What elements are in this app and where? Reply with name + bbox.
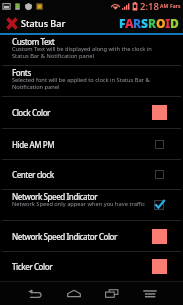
- button[interactable]: Recent apps: [99, 282, 124, 305]
- staticText: Clock Color: [12, 107, 51, 118]
- button[interactable]: Ticker Color: [0, 252, 183, 281]
- button[interactable]: Custom Text: [0, 35, 183, 65]
- staticText: 2:18: [140, 0, 159, 13]
- staticText: O: [156, 15, 165, 31]
- staticText: D: [170, 15, 178, 31]
- button[interactable]: Network Speed Indicator Color: [0, 221, 183, 251]
- staticText: Status Bar & Notification panel: [12, 52, 94, 60]
- staticText: Network Speed Indicator Color: [12, 231, 117, 242]
- staticText: R: [133, 15, 141, 31]
- button[interactable]: Home: [61, 282, 86, 305]
- staticText: Ticker Color: [12, 261, 53, 272]
- button[interactable]: Fonts: [0, 66, 183, 96]
- staticText: F: [119, 15, 125, 31]
- staticText: Custom Text: [12, 36, 55, 47]
- button[interactable]: Back: [22, 282, 47, 305]
- staticText: Fonts: [12, 67, 31, 78]
- staticText: R: [148, 15, 156, 31]
- button[interactable]: Hide AM PM: [0, 129, 183, 159]
- staticText: Network Speed only appear when you have …: [12, 200, 145, 208]
- staticText: Fars: [170, 3, 181, 10]
- staticText: AM: [160, 3, 169, 10]
- staticText: Hide AM PM: [12, 139, 55, 150]
- staticText: Custom Text will be displayed along with…: [12, 45, 152, 53]
- staticText: I: [165, 15, 170, 31]
- staticText: A: [125, 15, 133, 31]
- staticText: Network Speed Indicator: [12, 191, 98, 202]
- staticText: Selected font will be applied to clock i…: [12, 76, 150, 84]
- button[interactable]: Clock Color: [0, 97, 183, 128]
- button[interactable]: Center clock: [0, 160, 183, 189]
- button[interactable]: Network Speed Indicator: [0, 190, 183, 220]
- staticText: Notification panel: [12, 83, 60, 91]
- staticText: Center clock: [12, 169, 54, 180]
- staticText: Status Bar: [21, 17, 66, 29]
- button[interactable]: Menu: [137, 282, 162, 305]
- staticText: S: [141, 15, 148, 31]
